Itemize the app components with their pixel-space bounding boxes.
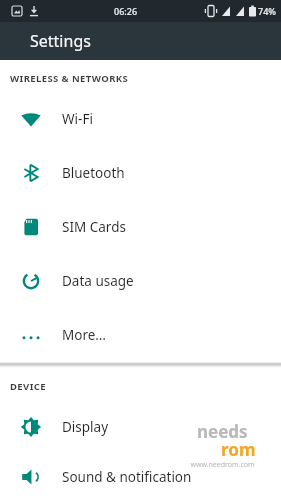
staticText: Sound & notification xyxy=(62,468,192,486)
staticText: Wi-Fi xyxy=(62,110,93,128)
staticText: rom xyxy=(221,438,256,461)
button[interactable]: More… xyxy=(0,308,281,362)
staticText: More… xyxy=(62,326,107,344)
staticText: Display xyxy=(62,418,109,436)
button[interactable]: Sound & notification xyxy=(0,454,281,500)
button[interactable]: Display xyxy=(0,400,281,454)
button[interactable]: Wi-Fi xyxy=(0,92,281,146)
staticText: www.needrom.com xyxy=(190,460,255,470)
staticText: 06:26 xyxy=(114,5,138,17)
staticText: Data usage xyxy=(62,272,134,290)
button[interactable]: Bluetooth xyxy=(0,146,281,200)
staticText: Bluetooth xyxy=(62,164,125,182)
staticText: needs xyxy=(197,420,248,443)
button[interactable]: Data usage xyxy=(0,254,281,308)
button[interactable]: SIM Cards xyxy=(0,200,281,254)
staticText: WIRELESS & NETWORKS xyxy=(10,72,129,85)
staticText: SIM Cards xyxy=(62,218,126,236)
staticText: DEVICE xyxy=(10,380,46,393)
staticText: 74% xyxy=(258,5,276,17)
staticText: Settings xyxy=(30,30,91,52)
